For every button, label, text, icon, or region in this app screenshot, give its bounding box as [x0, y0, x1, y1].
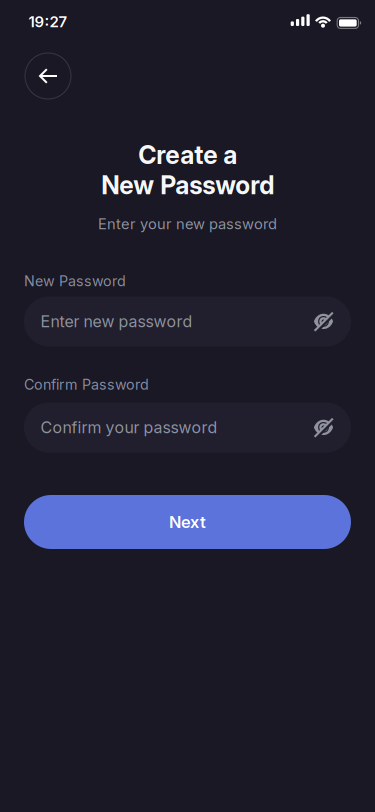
button[interactable]: Confirm your password — [24, 402, 351, 452]
staticText: Confirm Password — [24, 376, 149, 393]
button[interactable]: Back — [25, 53, 71, 99]
button[interactable]: Show password — [312, 310, 335, 333]
button[interactable]: Enter new password — [24, 296, 351, 346]
staticText: Enter new password — [40, 312, 192, 331]
button[interactable]: Show password — [312, 416, 335, 439]
button[interactable]: Next — [24, 495, 351, 549]
staticText: Next — [169, 512, 206, 532]
staticText: 19:27 — [28, 13, 67, 31]
staticText: New Password — [24, 272, 126, 290]
staticText: Confirm your password — [40, 418, 217, 437]
staticText: Enter your new password — [98, 215, 277, 233]
staticText: Create a New Password — [101, 140, 274, 200]
